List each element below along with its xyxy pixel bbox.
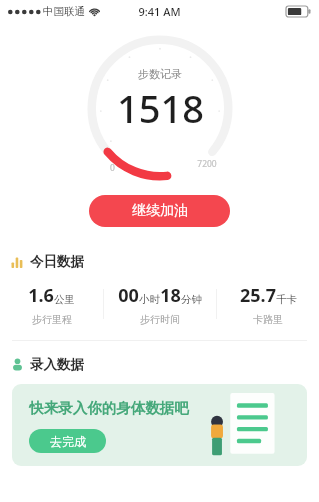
staticText: 卡路里 <box>253 313 283 326</box>
staticText: 18 <box>160 283 181 308</box>
staticText: 25.7 <box>240 283 276 308</box>
staticText: 步行时间 <box>140 313 180 326</box>
staticText: 小时 <box>139 293 160 306</box>
button[interactable]: 00 <box>104 283 216 326</box>
button[interactable]: 25.7 <box>217 283 319 326</box>
staticText: 00 <box>118 283 139 308</box>
staticText: 去完成 <box>50 434 86 449</box>
staticText: 步数记录 <box>138 67 182 81</box>
button[interactable]: 去完成 <box>29 429 106 453</box>
button[interactable]: 快来录入你的身体数据吧 <box>12 384 307 466</box>
staticText: 中国联通 <box>43 5 85 18</box>
staticText: 继续加油 <box>132 202 188 220</box>
staticText: 1.6 <box>28 283 54 308</box>
other: Today data <box>11 255 24 268</box>
staticText: 快来录入你的身体数据吧 <box>29 399 189 417</box>
staticText: 1518 <box>117 82 204 134</box>
staticText: 分钟 <box>181 293 202 306</box>
button[interactable]: 1.6 <box>0 283 103 326</box>
staticText: 7200 <box>197 158 217 170</box>
staticText: 步行里程 <box>32 313 72 326</box>
other: Enter data <box>11 358 24 371</box>
staticText: 9:41 AM <box>138 4 181 19</box>
button[interactable]: 继续加油 <box>89 195 230 227</box>
staticText: 今日数据 <box>30 253 84 270</box>
staticText: 录入数据 <box>30 356 84 373</box>
staticText: 千卡 <box>276 293 297 306</box>
staticText: 公里 <box>54 293 75 306</box>
staticText: 0 <box>110 162 115 174</box>
